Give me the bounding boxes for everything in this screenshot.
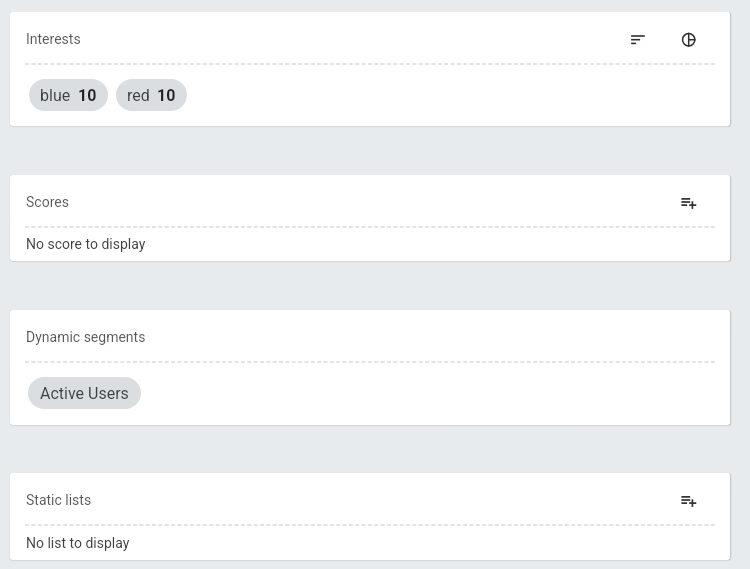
button[interactable]: red: [116, 79, 187, 111]
button[interactable]: Add score: [680, 193, 698, 211]
button[interactable]: Add list: [680, 491, 698, 509]
button[interactable]: Active Users: [28, 377, 141, 409]
button[interactable]: blue: [29, 79, 108, 111]
staticText: Active Users: [40, 384, 129, 403]
staticText: Scores: [26, 194, 69, 210]
staticText: No list to display: [26, 535, 130, 551]
staticText: 10: [157, 86, 176, 105]
button[interactable]: Chart: [680, 30, 698, 48]
staticText: red: [127, 86, 150, 105]
staticText: 10: [78, 86, 97, 105]
staticText: No score to display: [26, 236, 146, 252]
button[interactable]: Sort: [630, 30, 648, 48]
staticText: Interests: [26, 31, 81, 47]
staticText: Static lists: [26, 492, 92, 508]
staticText: Dynamic segments: [26, 329, 146, 345]
staticText: blue: [40, 86, 71, 105]
